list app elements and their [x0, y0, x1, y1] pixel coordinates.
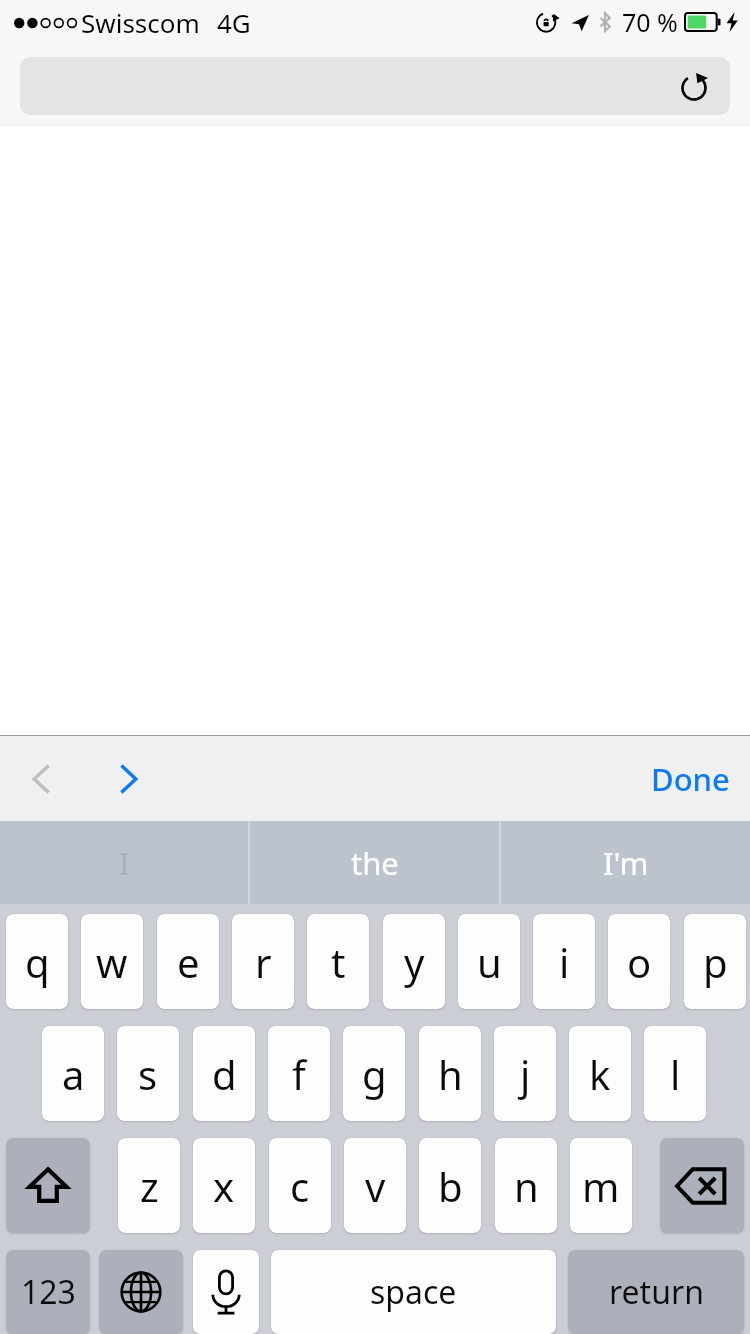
button[interactable]: Next field: [96, 747, 160, 811]
button[interactable]: f: [268, 1026, 330, 1121]
button[interactable]: space: [271, 1250, 556, 1334]
button[interactable]: k: [569, 1026, 631, 1121]
button[interactable]: l: [644, 1026, 706, 1121]
staticText: e: [177, 935, 200, 989]
button[interactable]: 123: [6, 1250, 90, 1334]
button[interactable]: o: [608, 914, 670, 1009]
staticText: o: [627, 935, 652, 989]
button[interactable]: the: [250, 821, 499, 904]
staticText: t: [331, 935, 346, 989]
button[interactable]: q: [6, 914, 68, 1009]
button[interactable]: j: [494, 1026, 556, 1121]
staticText: h: [438, 1047, 463, 1101]
button[interactable]: return: [568, 1250, 744, 1334]
button[interactable]: e: [157, 914, 219, 1009]
staticText: u: [477, 935, 502, 989]
button[interactable]: i: [533, 914, 595, 1009]
button[interactable]: p: [684, 914, 746, 1009]
staticText: r: [255, 935, 272, 989]
staticText: space: [370, 1270, 457, 1314]
button[interactable]: w: [81, 914, 143, 1009]
staticText: 123: [21, 1270, 76, 1314]
button[interactable]: t: [307, 914, 369, 1009]
button[interactable]: s: [117, 1026, 179, 1121]
button[interactable]: g: [343, 1026, 405, 1121]
button[interactable]: m: [570, 1138, 632, 1233]
staticText: I'm: [603, 842, 649, 884]
staticText: I: [119, 842, 130, 884]
button[interactable]: r: [232, 914, 294, 1009]
staticText: n: [514, 1159, 539, 1213]
staticText: y: [404, 935, 425, 989]
staticText: c: [290, 1159, 310, 1213]
button[interactable]: a: [42, 1026, 104, 1121]
button[interactable]: c: [269, 1138, 331, 1233]
staticText: Done: [651, 758, 730, 800]
staticText: z: [140, 1159, 159, 1213]
button[interactable]: Dictation: [193, 1250, 259, 1334]
button[interactable]: b: [419, 1138, 481, 1233]
button[interactable]: y: [383, 914, 445, 1009]
staticText: j: [520, 1047, 531, 1101]
staticText: v: [365, 1159, 386, 1213]
staticText: s: [138, 1047, 158, 1101]
staticText: 4G: [217, 5, 251, 40]
staticText: f: [292, 1047, 306, 1101]
staticText: i: [559, 935, 570, 989]
button[interactable]: Shift: [6, 1138, 90, 1233]
button[interactable]: n: [495, 1138, 557, 1233]
staticText: l: [670, 1047, 681, 1101]
button[interactable]: I'm: [501, 821, 750, 904]
staticText: b: [438, 1159, 463, 1213]
button[interactable]: Done: [645, 750, 736, 808]
staticText: k: [589, 1047, 611, 1101]
button[interactable]: Previous field: [10, 747, 74, 811]
button[interactable]: x: [193, 1138, 255, 1233]
staticText: x: [213, 1159, 235, 1213]
staticText: q: [25, 935, 50, 989]
button[interactable]: h: [419, 1026, 481, 1121]
button[interactable]: Reload: [20, 57, 730, 115]
staticText: m: [582, 1159, 620, 1213]
button[interactable]: u: [458, 914, 520, 1009]
button[interactable]: d: [193, 1026, 255, 1121]
button[interactable]: Change keyboard: [99, 1250, 183, 1334]
staticText: return: [609, 1270, 704, 1314]
staticText: 70 %: [622, 5, 678, 39]
staticText: Swisscom: [81, 5, 200, 40]
staticText: a: [62, 1047, 85, 1101]
staticText: the: [351, 842, 399, 884]
button[interactable]: v: [344, 1138, 406, 1233]
staticText: g: [362, 1047, 387, 1101]
staticText: p: [703, 935, 728, 989]
staticText: d: [212, 1047, 237, 1101]
button[interactable]: z: [118, 1138, 180, 1233]
staticText: w: [96, 935, 128, 989]
button[interactable]: Reload: [674, 66, 714, 106]
button[interactable]: Backspace: [660, 1138, 744, 1233]
